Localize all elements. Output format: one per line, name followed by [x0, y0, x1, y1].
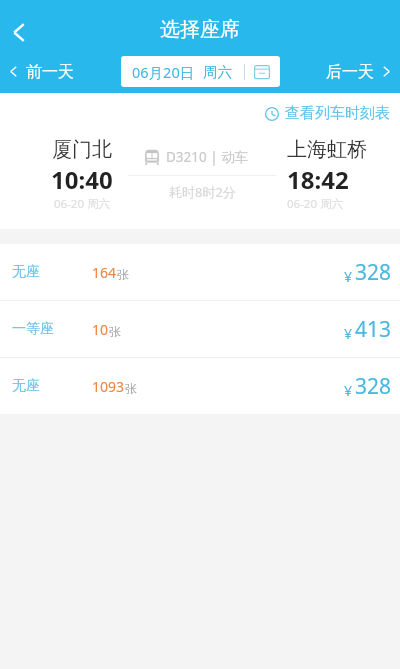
staticText: 10 — [92, 320, 109, 339]
staticText: 06-20 周六 — [287, 196, 344, 212]
button[interactable]: 返回 — [0, 8, 38, 56]
staticText: 164 — [92, 263, 117, 282]
staticText: 耗时8时2分 — [169, 183, 236, 201]
staticText: 328 — [355, 372, 392, 401]
staticText: 06月20日 — [132, 62, 195, 82]
staticText: 1093 — [92, 377, 125, 396]
staticText: 无座 — [12, 263, 40, 281]
staticText: 06-20 周六 — [54, 196, 111, 212]
staticText: 选择座席 — [160, 17, 240, 42]
staticText: 周六 — [203, 63, 232, 81]
button[interactable]: 06月20日 — [121, 56, 280, 87]
button[interactable]: 查看列车时刻表 — [257, 100, 400, 127]
staticText: 厦门北 — [52, 137, 112, 162]
staticText: 前一天 — [26, 62, 74, 82]
staticText: ¥ — [344, 324, 353, 343]
staticText: 18:42 — [287, 163, 349, 196]
staticText: 一等座 — [12, 320, 54, 338]
staticText: 张 — [125, 381, 137, 396]
button[interactable]: 后一天 — [320, 56, 396, 87]
button[interactable]: 无座 — [0, 358, 400, 414]
button[interactable]: 一等座 — [0, 301, 400, 357]
staticText: D3210 | 动车 — [166, 148, 249, 166]
staticText: 413 — [355, 315, 392, 344]
staticText: 后一天 — [326, 62, 374, 82]
staticText: 328 — [355, 258, 392, 287]
staticText: ¥ — [344, 381, 353, 400]
button[interactable]: 无座 — [0, 244, 400, 300]
staticText: ¥ — [344, 267, 353, 286]
staticText: 上海虹桥 — [287, 137, 367, 162]
staticText: 10:40 — [51, 163, 113, 196]
staticText: 无座 — [12, 377, 40, 395]
staticText: 张 — [109, 324, 121, 339]
button[interactable]: 前一天 — [4, 56, 80, 87]
staticText: 查看列车时刻表 — [285, 104, 390, 123]
staticText: 张 — [117, 267, 129, 282]
